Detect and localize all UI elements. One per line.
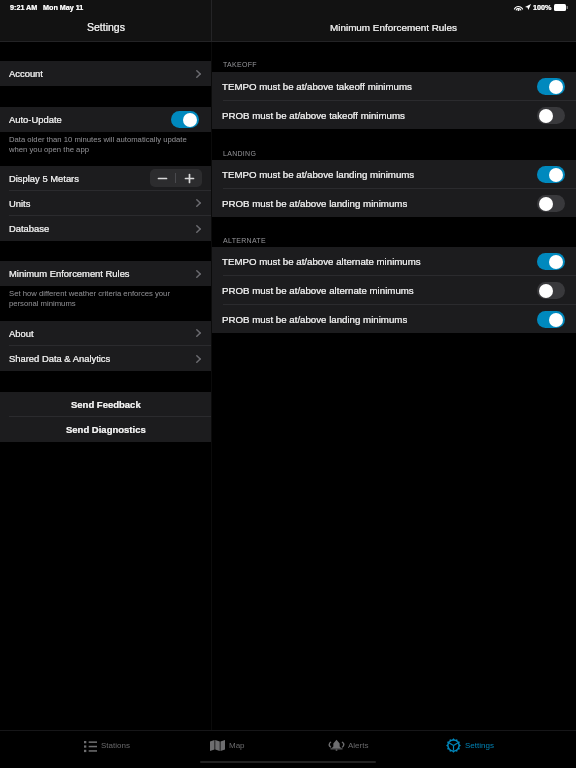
staticText: Minimum Enforcement Rules	[9, 268, 130, 279]
staticText: Alerts	[348, 741, 369, 750]
staticText: Account	[9, 68, 43, 79]
staticText: PROB must be at/above takeoff minimums	[222, 110, 405, 121]
button[interactable]: Stations	[46, 730, 167, 761]
button[interactable]: TEMPO must be at/above alternate minimum…	[212, 247, 576, 275]
staticText: About	[9, 328, 34, 339]
button[interactable]: Send Feedback	[0, 392, 211, 417]
button[interactable]: Send Diagnostics	[0, 417, 211, 442]
staticText: Data older than 10 minutes will automati…	[9, 135, 187, 153]
button[interactable]: PROB must be at/above landing minimums	[212, 189, 576, 217]
button[interactable]: TEMPO must be at/above takeoff minimums	[212, 72, 576, 100]
staticText: PROB must be at/above landing minimums	[222, 314, 408, 325]
staticText: TEMPO must be at/above takeoff minimums	[222, 81, 412, 92]
staticText: Send Feedback	[71, 399, 141, 410]
button[interactable]: Toggle on	[537, 78, 565, 95]
staticText: Shared Data & Analytics	[9, 353, 111, 364]
button[interactable]: TEMPO must be at/above landing minimums	[212, 160, 576, 188]
staticText: Set how different weather criteria enfor…	[9, 289, 184, 307]
staticText: PROB must be at/above landing minimums	[222, 198, 408, 209]
button[interactable]: Display 5 Metars	[0, 166, 211, 191]
staticText: PROB must be at/above alternate minimums	[222, 285, 414, 296]
staticText: Auto-Update	[9, 114, 62, 125]
button[interactable]: Units	[0, 191, 211, 216]
button[interactable]: Minimum Enforcement Rules	[0, 261, 211, 286]
button[interactable]: Toggle off	[537, 107, 565, 124]
button[interactable]: Increase	[176, 169, 202, 187]
button[interactable]: PROB must be at/above alternate minimums	[212, 276, 576, 304]
staticText: Display 5 Metars	[9, 173, 79, 184]
staticText: TAKEOFF	[223, 61, 257, 69]
staticText: Map	[229, 741, 245, 750]
staticText: Settings	[87, 21, 125, 33]
staticText: Minimum Enforcement Rules	[330, 22, 457, 33]
button[interactable]: Database	[0, 216, 211, 241]
button[interactable]: Toggle off	[537, 282, 565, 299]
staticText: 9:21 AM	[10, 3, 38, 11]
staticText: Database	[9, 223, 50, 234]
staticText: TEMPO must be at/above alternate minimum…	[222, 256, 421, 267]
staticText: Settings	[465, 741, 494, 750]
button[interactable]: About	[0, 321, 211, 346]
button[interactable]: Toggle off	[537, 195, 565, 212]
button[interactable]: Shared Data & Analytics	[0, 346, 211, 371]
button[interactable]: PROB must be at/above landing minimums	[212, 305, 576, 333]
staticText: Stations	[101, 741, 130, 750]
button[interactable]: Account	[0, 61, 211, 86]
staticText: Units	[9, 198, 31, 209]
button[interactable]: Auto-Update	[0, 107, 211, 132]
staticText: LANDING	[223, 150, 257, 158]
button[interactable]: Alerts	[288, 730, 409, 761]
button[interactable]: Decrease	[150, 169, 175, 187]
button[interactable]: Toggle on	[537, 311, 565, 328]
button[interactable]: PROB must be at/above takeoff minimums	[212, 101, 576, 129]
button[interactable]: Toggle on	[171, 111, 199, 128]
staticText: Mon May 11	[43, 3, 84, 11]
staticText: Send Diagnostics	[66, 424, 146, 435]
button[interactable]: Toggle on	[537, 166, 565, 183]
staticText: 100%	[533, 3, 552, 11]
staticText: TEMPO must be at/above landing minimums	[222, 169, 415, 180]
button[interactable]: Settings	[409, 730, 530, 761]
staticText: ALTERNATE	[223, 237, 266, 245]
button[interactable]: Map	[167, 730, 288, 761]
button[interactable]: Toggle on	[537, 253, 565, 270]
